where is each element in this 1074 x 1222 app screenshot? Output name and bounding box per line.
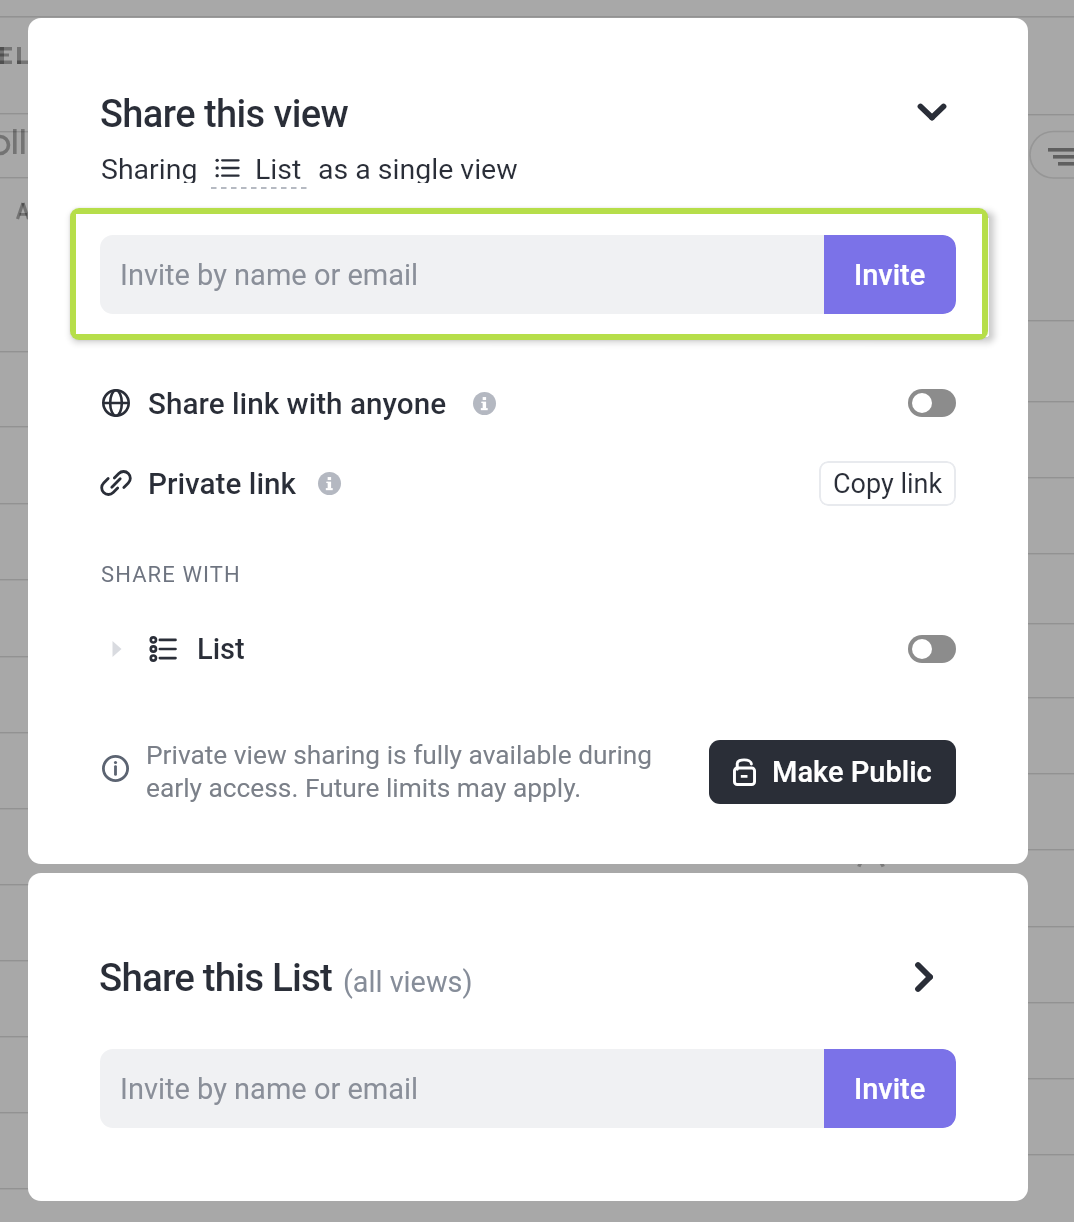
staticText: Private link: [148, 466, 296, 501]
button[interactable]: Invite: [824, 1049, 956, 1128]
button[interactable]: Invite: [824, 235, 956, 314]
staticText: Invite by name or email: [120, 258, 419, 292]
button[interactable]: Invite by name or email: [100, 1049, 956, 1128]
staticText: List: [255, 153, 302, 183]
button[interactable]: Private link: [28, 455, 1028, 511]
staticText: Share link with anyone: [148, 386, 447, 421]
staticText: SHARE WITH: [101, 562, 241, 588]
button[interactable]: Open: [902, 955, 946, 999]
staticText: Invite by name or email: [120, 1072, 419, 1106]
button[interactable]: Toggle: [908, 389, 956, 417]
staticText: Invite: [854, 258, 926, 292]
staticText: Share this List: [99, 955, 333, 1000]
button[interactable]: Copy link: [819, 461, 956, 506]
button[interactable]: List: [215, 153, 302, 183]
staticText: Invite: [854, 1072, 926, 1106]
button[interactable]: Make Public: [709, 740, 956, 804]
button[interactable]: Share link with anyone: [28, 375, 1028, 431]
staticText: Share this view: [100, 92, 349, 137]
button[interactable]: List: [28, 621, 1028, 677]
staticText: Private view sharing is fully available …: [146, 740, 653, 804]
staticText: List: [197, 632, 245, 666]
staticText: Make Public: [772, 755, 932, 789]
staticText: Sharing: [101, 153, 198, 183]
staticText: Copy link: [833, 468, 943, 500]
button[interactable]: Collapse: [910, 90, 954, 134]
button[interactable]: Toggle: [908, 635, 956, 663]
staticText: as a single view: [318, 153, 518, 183]
button[interactable]: Invite by name or email: [100, 235, 956, 314]
staticText: (all views): [343, 965, 473, 999]
